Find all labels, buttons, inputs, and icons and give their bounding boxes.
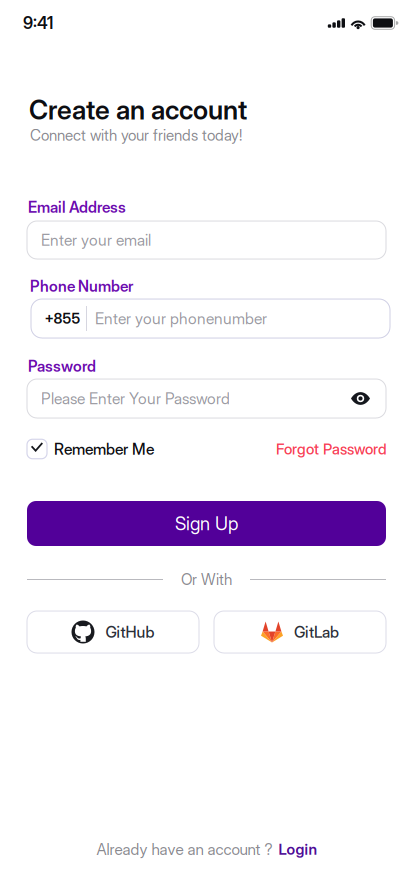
button[interactable]: Show password [351,391,370,405]
button[interactable]: Forgot Password [276,440,387,458]
staticText: Please Enter Your Password [41,389,230,408]
staticText: Login [278,840,317,858]
staticText: Or With [181,570,232,589]
button[interactable]: Login [272,840,317,858]
button[interactable]: GitLab [214,611,386,653]
staticText: GitHub [105,623,154,641]
button[interactable]: Sign Up [27,501,386,546]
button[interactable]: GitHub [27,611,199,653]
staticText: Forgot Password [276,440,387,458]
staticText: GitLab [294,623,339,641]
staticText: Enter your email [41,231,151,249]
staticText: Already have an account ? [96,840,272,859]
staticText: +855 [44,310,80,327]
staticText: Create an account [29,94,247,126]
staticText: Email Address [28,198,126,216]
staticText: Enter your phonenumber [95,309,267,328]
staticText: 9:41 [23,13,53,33]
staticText: Phone Number [30,277,133,295]
staticText: Remember Me [54,440,154,458]
staticText: Sign Up [175,512,238,535]
staticText: Connect with your friends today! [30,126,242,144]
button[interactable]: Remember Me [27,439,154,459]
staticText: Password [28,357,96,375]
